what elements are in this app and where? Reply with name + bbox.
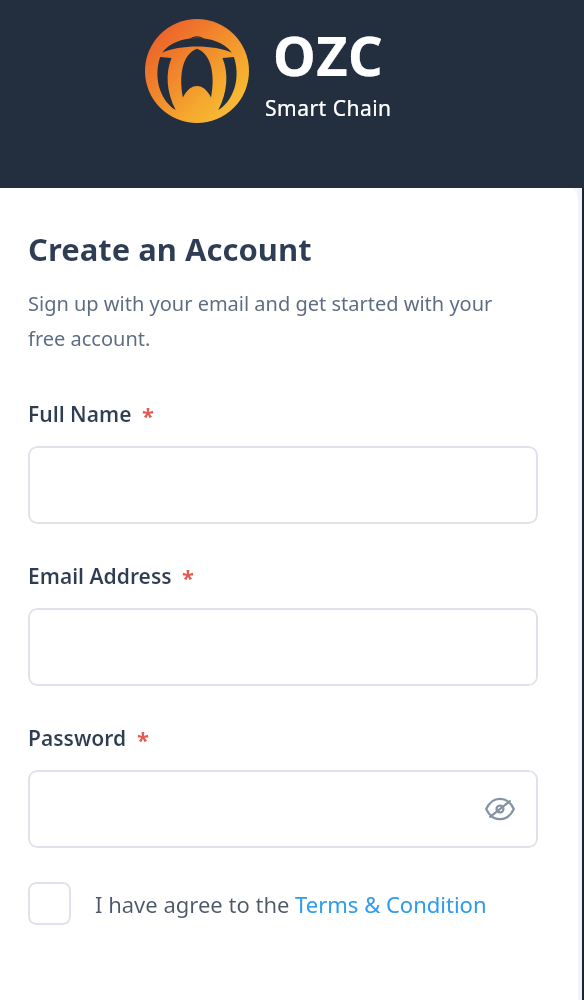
button[interactable]: Show password [474,783,526,835]
staticText: OZC [273,18,384,92]
button[interactable]: Agree to terms checkbox [28,882,550,925]
staticText: Email Address [28,562,172,591]
staticText: * [137,724,149,754]
staticText: * [182,562,194,592]
staticText: Smart Chain [265,94,392,123]
staticText: Create an Account [28,228,312,270]
button[interactable] [28,608,538,686]
button[interactable]: Agree to terms checkbox [28,882,71,925]
staticText: Full Name [28,400,132,429]
staticText: * [142,400,154,430]
staticText: Sign up with your email and get started … [28,290,528,352]
staticText: I have agree to the Terms & Condition [95,889,487,919]
staticText: Password [28,724,127,753]
button[interactable]: Show password [28,770,538,848]
button[interactable] [28,446,538,524]
